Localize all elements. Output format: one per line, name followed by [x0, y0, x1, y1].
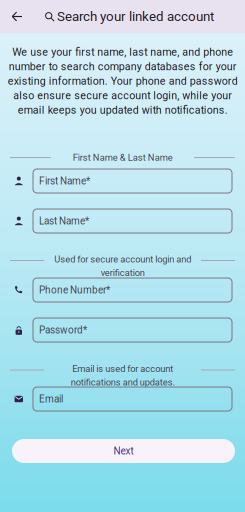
button[interactable]: Email: [33, 387, 232, 411]
staticText: Phone Number*: [39, 284, 110, 296]
staticText: Last Name*: [39, 215, 89, 227]
staticText: We use your first name, last name, and p…: [7, 46, 237, 116]
button[interactable]: Back: [10, 4, 34, 28]
button[interactable]: Last Name*: [33, 209, 232, 233]
staticText: Search your linked account: [57, 9, 214, 24]
staticText: Used for secure account login and verifi…: [54, 254, 191, 278]
button[interactable]: Phone Number*: [33, 278, 232, 302]
staticText: First Name & Last Name: [72, 152, 172, 163]
staticText: Email is used for account notifications …: [70, 363, 174, 388]
staticText: First Name*: [39, 175, 90, 187]
staticText: Password*: [39, 324, 87, 336]
staticText: Email: [39, 393, 63, 405]
button[interactable]: Password*: [33, 318, 232, 342]
button[interactable]: First Name*: [33, 169, 232, 193]
button[interactable]: Next: [12, 439, 235, 463]
staticText: Next: [113, 445, 133, 457]
